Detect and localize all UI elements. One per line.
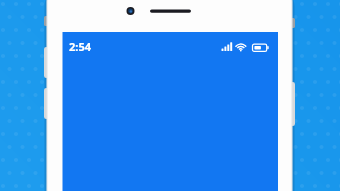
button[interactable]: Clock 2:54 xyxy=(69,39,103,53)
button[interactable]: Clock 2:54 xyxy=(0,0,340,191)
button[interactable]: Volume up xyxy=(44,47,52,78)
button[interactable]: Volume down xyxy=(44,88,52,119)
staticText: 2:54 xyxy=(69,39,91,53)
button[interactable]: Power xyxy=(289,82,297,126)
